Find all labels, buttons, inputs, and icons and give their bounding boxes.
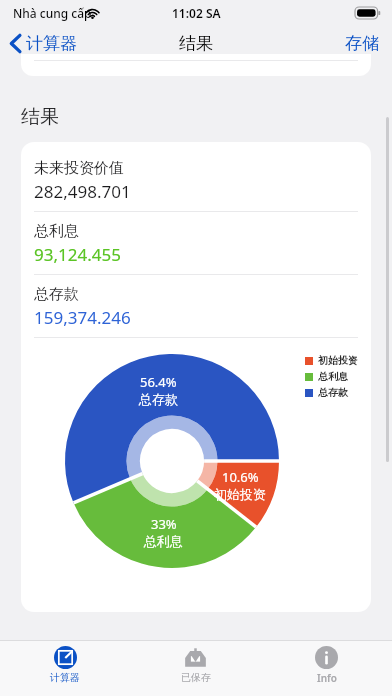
staticText: 存储 [345, 33, 379, 54]
button[interactable]: 计算器 [0, 29, 85, 58]
staticText: 33% [151, 515, 177, 533]
staticText: 初始投资 [318, 354, 358, 367]
staticText: 结果 [179, 33, 213, 54]
staticText: 总利息 [34, 222, 79, 241]
staticText: Info [317, 671, 337, 685]
staticText: 56.4% [140, 373, 177, 391]
staticText: 159,374.246 [34, 306, 131, 329]
staticText: 总存款 [139, 391, 178, 407]
button[interactable]: 已保存 [130, 641, 261, 696]
staticText: 总利息 [144, 533, 183, 549]
staticText: 总利息 [318, 370, 348, 383]
staticText: 计算器 [50, 671, 80, 684]
staticText: 11:02 SA [172, 5, 221, 21]
staticText: 总存款 [34, 285, 79, 304]
staticText: 结果 [21, 105, 59, 129]
staticText: Nhà cung cấp [13, 5, 92, 21]
staticText: 10.6% [222, 468, 259, 486]
button[interactable]: 存储 [332, 29, 392, 58]
staticText: 未来投资价值 [34, 159, 124, 178]
button[interactable]: Info [261, 641, 392, 696]
staticText: 93,124.455 [34, 243, 121, 266]
staticText: 已保存 [181, 671, 211, 684]
button[interactable]: 计算器 [0, 641, 130, 696]
staticText: 总存款 [318, 386, 348, 399]
staticText: 初始投资 [214, 486, 266, 502]
staticText: 282,498.701 [34, 180, 131, 203]
staticText: 计算器 [26, 33, 77, 54]
